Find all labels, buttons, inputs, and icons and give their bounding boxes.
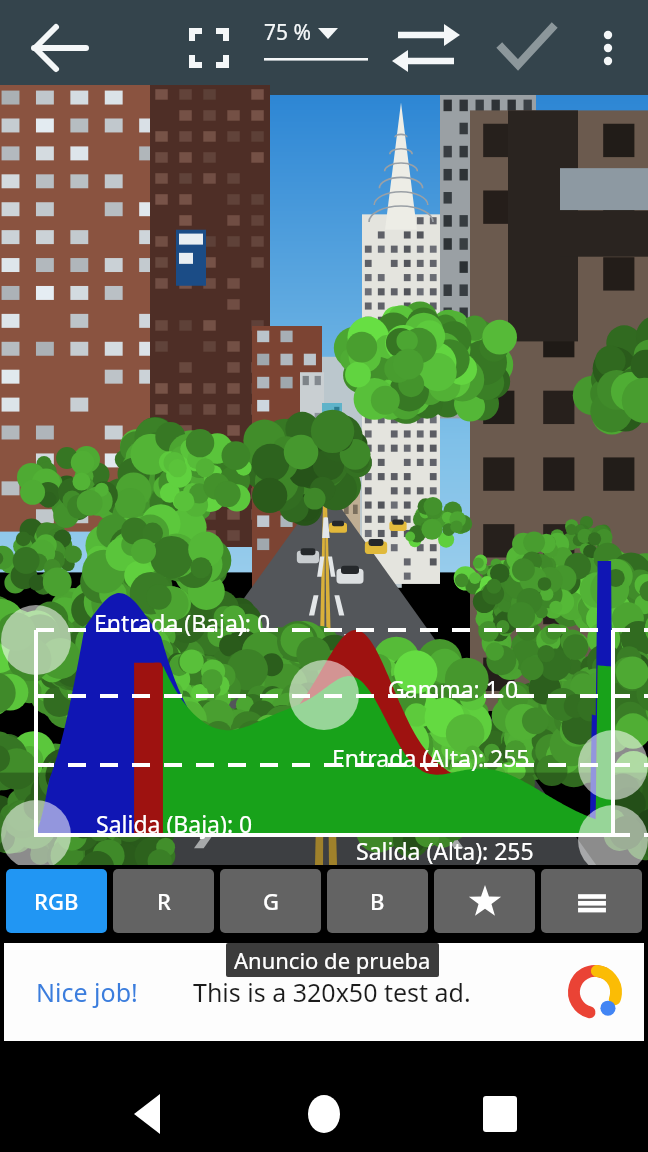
button[interactable]: RGB xyxy=(6,869,107,933)
staticText: B xyxy=(370,886,385,916)
button[interactable]: Back xyxy=(14,20,86,76)
button[interactable]: Back xyxy=(112,1078,184,1150)
button[interactable]: Nice job! xyxy=(4,943,644,1041)
button[interactable]: 75 % xyxy=(264,18,368,74)
staticText: Anuncio de prueba xyxy=(234,945,431,975)
button[interactable]: Favourites xyxy=(434,869,535,933)
staticText: G xyxy=(263,886,279,916)
staticText: Entrada (Alta): 255 xyxy=(332,742,530,773)
staticText: Gamma: 1.0 xyxy=(388,673,519,704)
button[interactable]: G xyxy=(220,869,321,933)
button[interactable]: B xyxy=(327,869,428,933)
staticText: R xyxy=(157,886,171,916)
staticText: This is a 320x50 test ad. xyxy=(193,975,471,1009)
staticText: Entrada (Baja): 0 xyxy=(94,607,271,638)
button[interactable]: Menu xyxy=(541,869,642,933)
staticText: Salida (Baja): 0 xyxy=(96,808,253,839)
button[interactable]: More options xyxy=(582,20,634,76)
button[interactable]: Apply xyxy=(492,20,556,76)
staticText: Nice job! xyxy=(36,975,138,1009)
button[interactable]: Fit to screen xyxy=(178,20,240,76)
staticText: RGB xyxy=(34,886,79,916)
button[interactable]: Home xyxy=(288,1078,360,1150)
button[interactable]: R xyxy=(113,869,214,933)
button[interactable]: Recent apps xyxy=(464,1078,536,1150)
button[interactable]: Flip horizontally xyxy=(392,20,460,76)
staticText: 75 % xyxy=(264,18,311,47)
staticText: Salida (Alta): 255 xyxy=(356,835,534,866)
